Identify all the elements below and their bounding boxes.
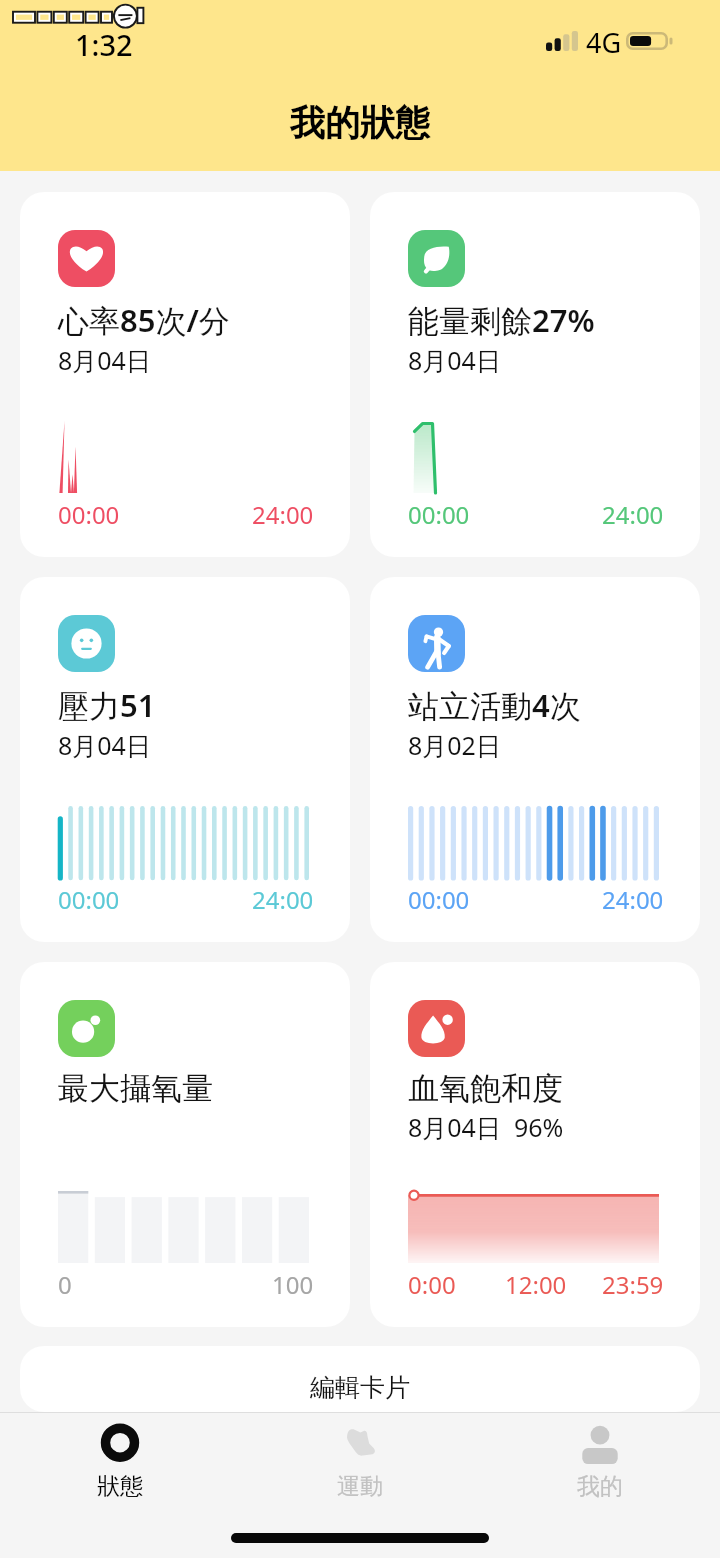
staticText: 1:32: [75, 25, 133, 64]
staticText: 00:00: [58, 883, 120, 916]
staticText: 血氧飽和度: [408, 1069, 563, 1108]
staticText: 最大攝氧量: [58, 1069, 213, 1108]
staticText: 24:00: [602, 498, 664, 531]
staticText: 心率85次/分: [58, 299, 230, 341]
staticText: 00:00: [408, 883, 470, 916]
staticText: 8月04日 96%: [408, 1110, 564, 1144]
button[interactable]: 狀態: [0, 1413, 240, 1503]
button[interactable]: 我的: [480, 1413, 720, 1503]
button[interactable]: 能量剩餘27%: [370, 192, 700, 557]
staticText: 壓力51: [58, 684, 156, 726]
staticText: 24:00: [602, 883, 664, 916]
staticText: 編輯卡片: [310, 1372, 410, 1403]
button[interactable]: 編輯卡片: [20, 1346, 700, 1412]
staticText: 24:00: [252, 498, 314, 531]
button[interactable]: 最大攝氧量: [20, 962, 350, 1327]
staticText: 12:00: [505, 1268, 567, 1301]
staticText: 8月04日: [408, 343, 501, 377]
staticText: 站立活動4次: [408, 684, 581, 726]
staticText: 8月04日: [58, 728, 151, 762]
staticText: 我的狀態: [290, 101, 430, 145]
button[interactable]: 壓力51: [20, 577, 350, 942]
staticText: 我的: [577, 1472, 623, 1501]
staticText: 0:00: [408, 1268, 456, 1301]
staticText: 00:00: [58, 498, 120, 531]
button[interactable]: 心率85次/分: [20, 192, 350, 557]
staticText: 能量剩餘27%: [408, 299, 595, 341]
staticText: 8月04日: [58, 343, 151, 377]
staticText: 0: [58, 1268, 72, 1301]
button[interactable]: 運動: [240, 1413, 480, 1503]
staticText: 運動: [337, 1472, 383, 1501]
staticText: 100: [272, 1268, 314, 1301]
staticText: 8月02日: [408, 728, 501, 762]
staticText: 23:59: [602, 1268, 664, 1301]
staticText: 00:00: [408, 498, 470, 531]
staticText: 24:00: [252, 883, 314, 916]
staticText: 狀態: [97, 1472, 143, 1501]
button[interactable]: 血氧飽和度: [370, 962, 700, 1327]
staticText: 4G: [586, 24, 622, 61]
button[interactable]: 站立活動4次: [370, 577, 700, 942]
